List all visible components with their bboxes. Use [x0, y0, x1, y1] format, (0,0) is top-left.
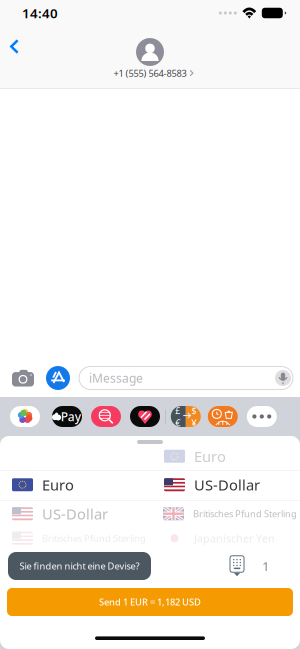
staticText: Euro — [194, 446, 226, 466]
staticText: +1 (555) 564-8583 — [113, 67, 186, 79]
button[interactable]: Apple Pay — [52, 406, 82, 427]
staticText: $ — [191, 404, 196, 416]
button[interactable]: Shopping — [208, 406, 238, 427]
button[interactable]: Camera — [0, 363, 46, 393]
staticText: 1 — [262, 557, 270, 575]
button[interactable]: Amount 1 — [230, 555, 300, 576]
staticText: US-Dollar — [42, 504, 108, 523]
button[interactable]: More apps — [247, 406, 277, 427]
staticText: Sie finden nicht eine Devise? — [19, 560, 139, 572]
button[interactable]: Fitness — [130, 406, 160, 427]
button[interactable]: Image search — [91, 406, 121, 427]
button[interactable]: Sie finden nicht eine Devise? — [8, 552, 151, 580]
button[interactable]: Contact +1 (555) 564-8583 — [106, 38, 193, 79]
staticText: Euro — [42, 475, 74, 494]
staticText: US-Dollar — [194, 475, 260, 494]
button[interactable]: Dictate — [275, 370, 293, 386]
staticText: Send 1 EUR = 1,182 USD — [99, 596, 201, 608]
button[interactable]: Currency converter — [171, 406, 201, 427]
staticText: Britisches Pfund Sterling — [193, 508, 297, 520]
button[interactable]: Back — [0, 30, 33, 63]
staticText: Pay — [61, 408, 81, 424]
button[interactable]: Send 1 EUR = 1,182 USD — [7, 588, 293, 616]
button[interactable]: App Store — [46, 363, 79, 393]
staticText: Japanischer Yen — [194, 531, 275, 545]
staticText: iMessage — [89, 370, 143, 386]
staticText: 14:40 — [22, 4, 58, 22]
staticText: Britisches Pfund Sterling — [42, 532, 146, 544]
staticText: € — [175, 416, 180, 429]
staticText: £ — [175, 404, 180, 416]
button[interactable]: Photos — [10, 406, 40, 427]
staticText: ¥ — [191, 416, 196, 429]
